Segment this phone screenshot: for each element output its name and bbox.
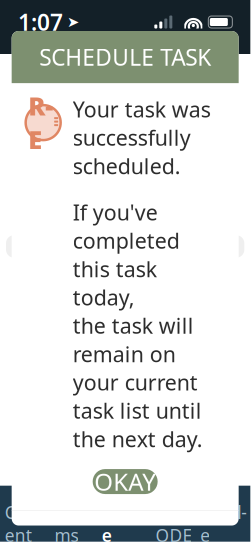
button[interactable]: Content (2, 462, 51, 542)
staticText: 00 (106, 272, 132, 302)
staticText: Profile (200, 501, 247, 542)
staticText: task list until the next day. (73, 396, 203, 453)
staticText: 1:07 (18, 7, 63, 37)
staticText: the task will remain on your current (73, 311, 198, 396)
staticText: If you've completed this task today, (73, 198, 180, 311)
staticText: ReCODE (155, 501, 193, 542)
button[interactable]: OKAY (93, 469, 158, 494)
staticText: DONE (78, 384, 172, 429)
staticText: 30 (98, 174, 132, 213)
staticText: 00 (106, 123, 132, 153)
staticText: OKAY (94, 466, 156, 497)
button[interactable]: Home (100, 462, 150, 542)
button[interactable]: Forums (51, 462, 101, 542)
staticText: RE (28, 89, 53, 156)
staticText: Your task was successfully scheduled. (73, 95, 211, 180)
staticText: ➤ (67, 14, 79, 30)
staticText: Content (5, 501, 49, 542)
staticText: Forums (54, 501, 97, 542)
staticText: 30 (104, 140, 132, 173)
staticText: 6 (49, 123, 62, 153)
button[interactable]: DONE (15, 370, 235, 443)
button[interactable]: Profile (199, 462, 248, 542)
staticText: AM (142, 191, 191, 233)
staticText: 30 (104, 251, 132, 285)
staticText: 7 (48, 140, 62, 173)
staticText: PM (142, 211, 187, 250)
staticText: 00 (100, 156, 132, 194)
staticText: 00 (96, 191, 132, 233)
button[interactable]: ReCODE (150, 462, 199, 542)
staticText: SCHEDULE TASK (39, 42, 211, 72)
staticText: 30 (98, 211, 132, 250)
staticText: Home (102, 501, 149, 542)
staticText: 00 (100, 231, 132, 268)
